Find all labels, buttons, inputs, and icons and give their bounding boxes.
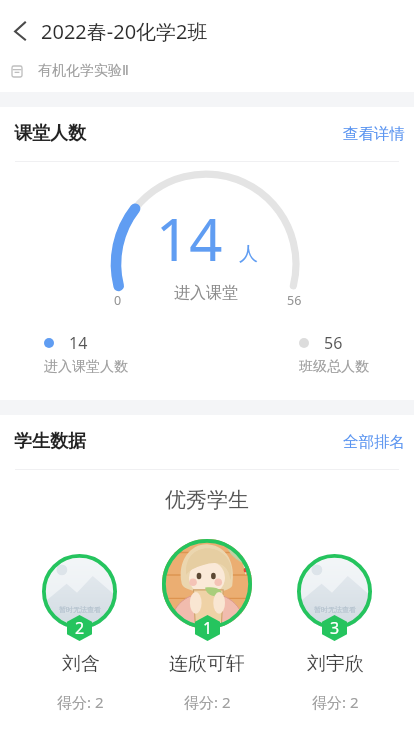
button[interactable]: Back: [0, 8, 42, 54]
staticText: 得分: 2: [57, 692, 104, 712]
staticText: 全部排名: [343, 432, 405, 452]
staticText: 14: [69, 332, 88, 354]
staticText: 课堂人数: [14, 122, 86, 145]
button[interactable]: 暂时无法查看: [42, 554, 117, 629]
staticText: 1: [203, 617, 213, 639]
staticText: 暂时无法查看: [314, 605, 356, 614]
staticText: 查看详情: [343, 124, 405, 144]
staticText: 人: [239, 242, 258, 266]
button[interactable]: 刘宇欣: [275, 652, 395, 712]
staticText: 刘含: [62, 652, 100, 676]
staticText: 0: [114, 292, 122, 309]
staticText: 班级总人数: [299, 358, 369, 376]
button[interactable]: 全部排名: [343, 432, 405, 452]
staticText: 进入课堂: [174, 283, 238, 303]
button[interactable]: 查看详情: [343, 124, 405, 144]
staticText: 有机化学实验Ⅱ: [38, 62, 129, 80]
staticText: 学生数据: [14, 430, 86, 453]
staticText: 3: [330, 617, 340, 639]
button[interactable]: [162, 539, 252, 629]
button[interactable]: 刘含: [20, 652, 140, 712]
staticText: 14: [156, 199, 223, 278]
staticText: 得分: 2: [312, 692, 359, 712]
staticText: 2: [75, 617, 85, 639]
staticText: 暂时无法查看: [59, 605, 101, 614]
staticText: 56: [324, 332, 343, 354]
staticText: 刘宇欣: [307, 652, 364, 676]
staticText: 56: [287, 292, 302, 309]
button[interactable]: 连欣可轩: [147, 652, 267, 712]
staticText: 连欣可轩: [169, 652, 245, 676]
button[interactable]: 暂时无法查看: [297, 554, 372, 629]
staticText: 优秀学生: [165, 487, 249, 513]
staticText: 2022春-20化学2班: [41, 18, 208, 45]
staticText: 进入课堂人数: [44, 358, 128, 376]
staticText: 得分: 2: [184, 692, 231, 712]
